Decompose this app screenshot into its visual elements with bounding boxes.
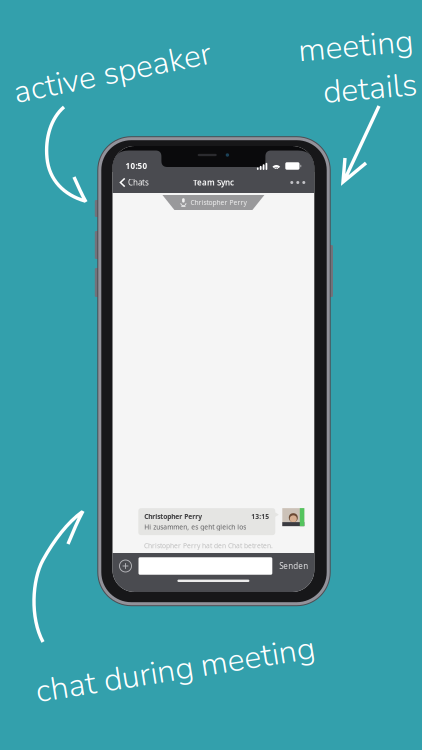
button[interactable]: Senden [277, 561, 308, 571]
button[interactable]: Message field [138, 557, 272, 575]
staticText: meeting [300, 24, 415, 68]
staticText: 13:15 [251, 512, 269, 521]
staticText: 10:50 [125, 161, 147, 171]
staticText: Hi zusammen, es geht gleich los [144, 522, 246, 531]
staticText: Team Sync [193, 177, 234, 188]
staticText: details [321, 68, 415, 111]
button[interactable]: Add attachment [117, 558, 133, 574]
staticText: Christopher Perry [190, 198, 246, 207]
button[interactable]: More options [281, 171, 314, 193]
staticText: chat during meeting [34, 648, 316, 692]
staticText: Christopher Perry [144, 512, 202, 521]
staticText: Christopher Perry hat den Chat betreten. [144, 541, 273, 550]
staticText: Senden [279, 561, 308, 571]
button[interactable]: Chats [112, 171, 155, 193]
staticText: Chats [128, 177, 149, 188]
staticText: active speaker [12, 51, 213, 95]
